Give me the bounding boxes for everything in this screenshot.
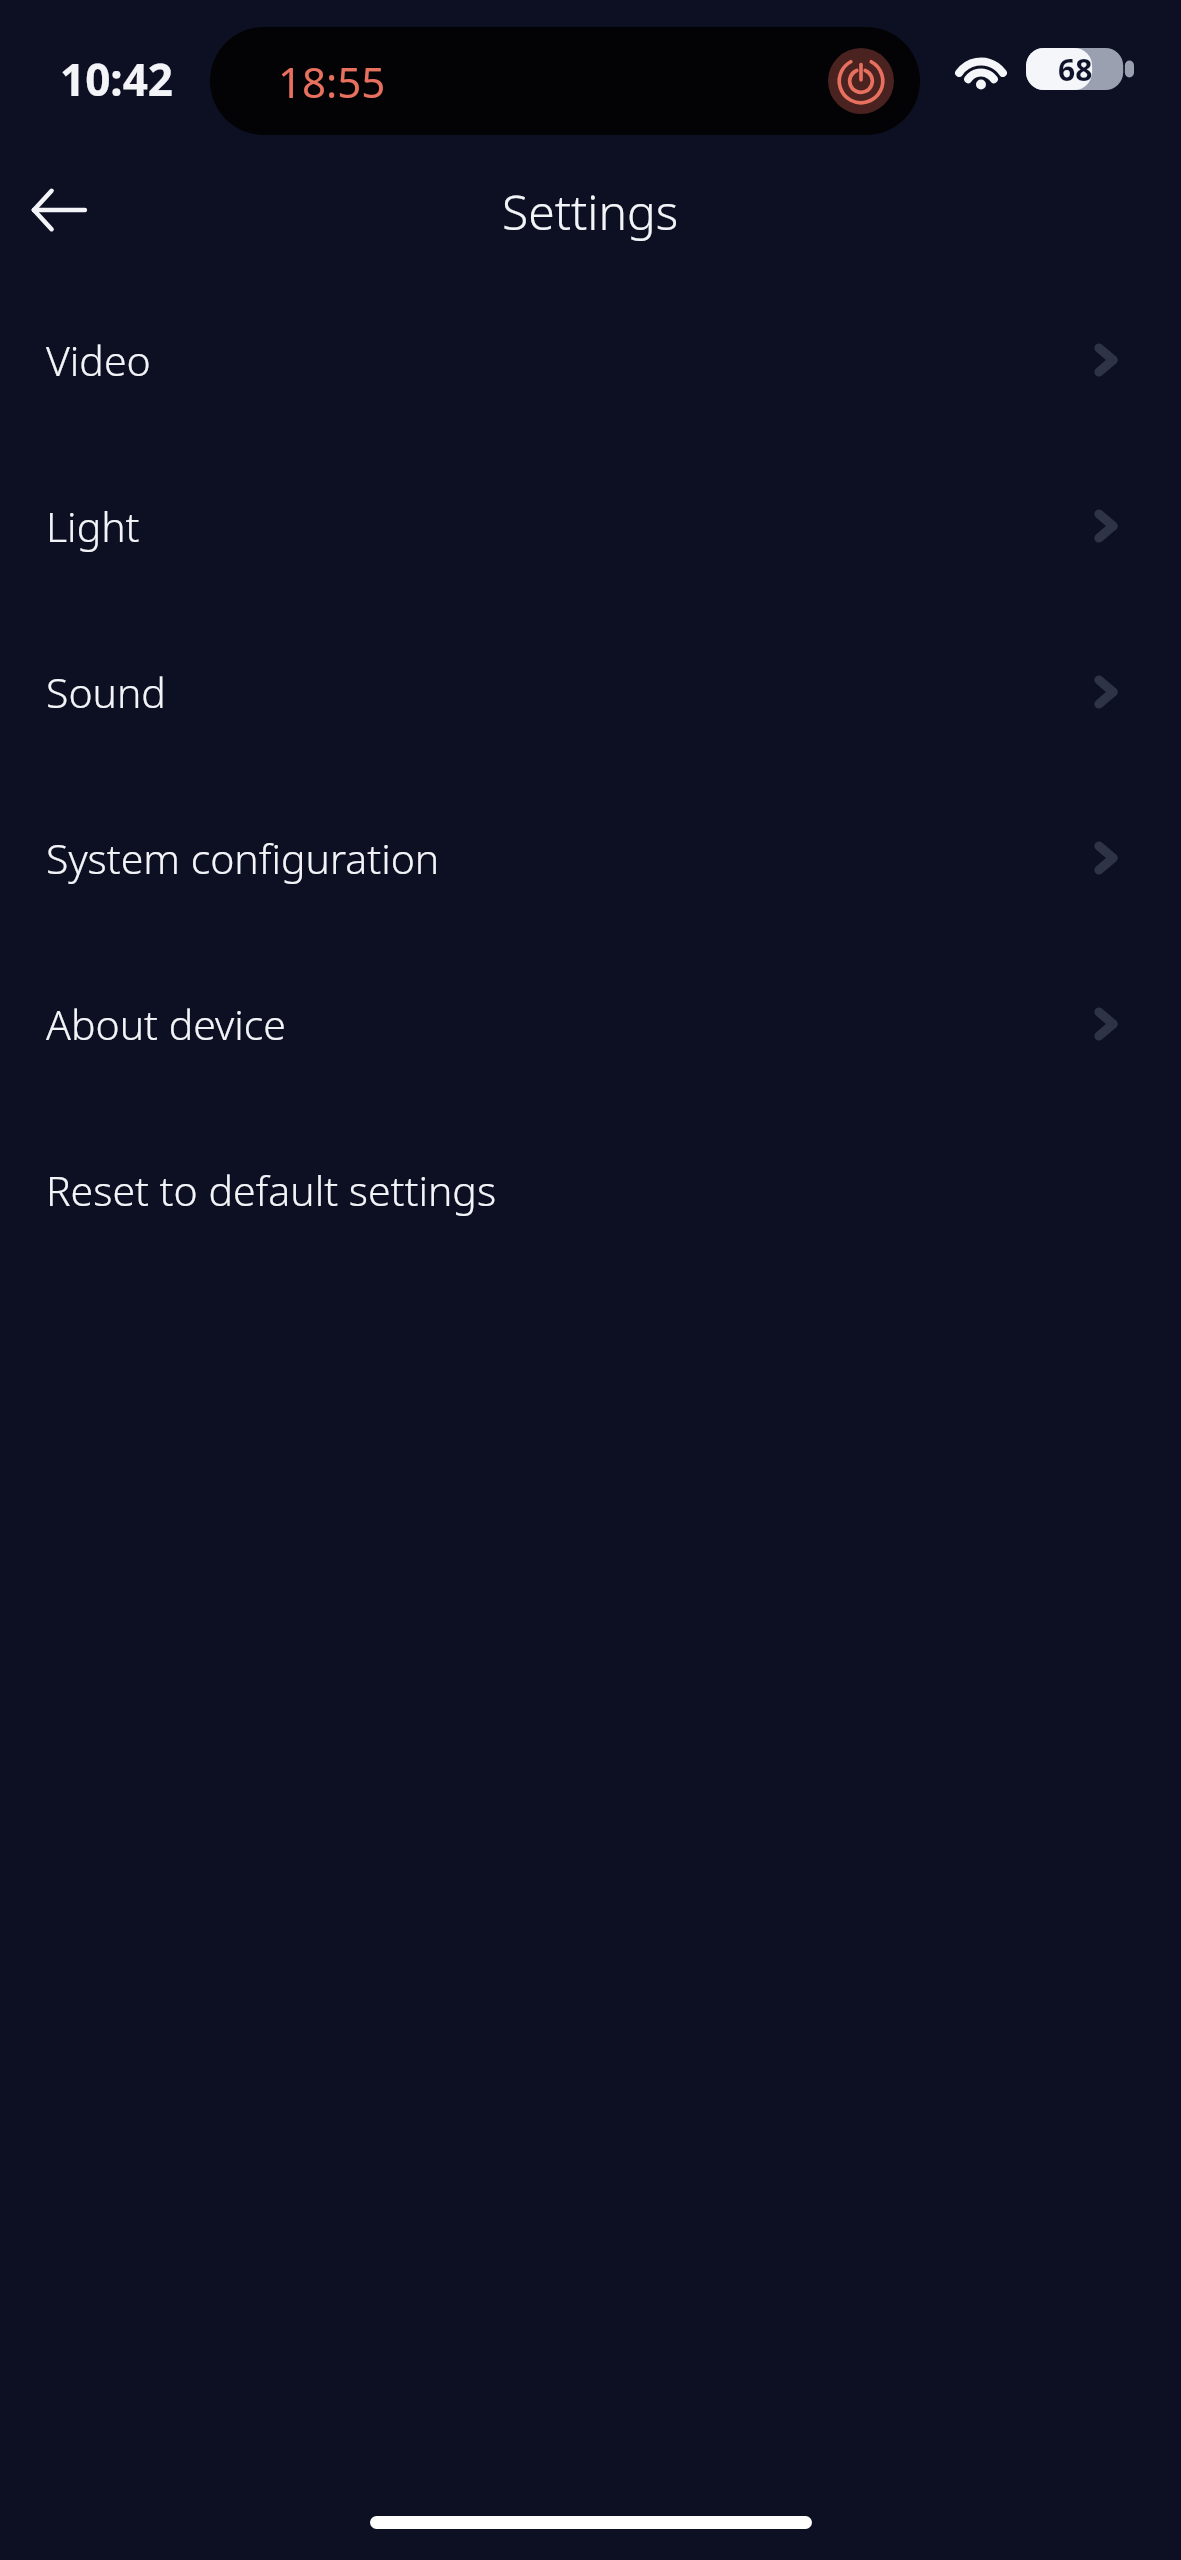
staticText: Settings (502, 179, 679, 244)
staticText: Sound (46, 664, 166, 720)
staticText: 18:55 (278, 53, 386, 110)
button[interactable]: Light (0, 443, 1181, 609)
button[interactable]: 18:55 (210, 27, 920, 135)
staticText: Reset to default settings (46, 1162, 497, 1218)
button[interactable]: Sound (0, 609, 1181, 775)
button[interactable]: About device (0, 941, 1181, 1107)
button[interactable]: Reset to default settings (0, 1107, 1181, 1273)
staticText: 68 (1058, 49, 1093, 90)
other: Battery 68 percent (1026, 48, 1134, 90)
button[interactable]: Back (14, 166, 102, 254)
staticText: Light (46, 498, 140, 554)
staticText: Video (46, 332, 151, 388)
button[interactable]: Video (0, 277, 1181, 443)
button[interactable]: System configuration (0, 775, 1181, 941)
staticText: About device (46, 996, 286, 1052)
staticText: 10:42 (60, 49, 174, 109)
staticText: System configuration (46, 830, 440, 886)
other: Wi-Fi connected (952, 44, 1010, 90)
